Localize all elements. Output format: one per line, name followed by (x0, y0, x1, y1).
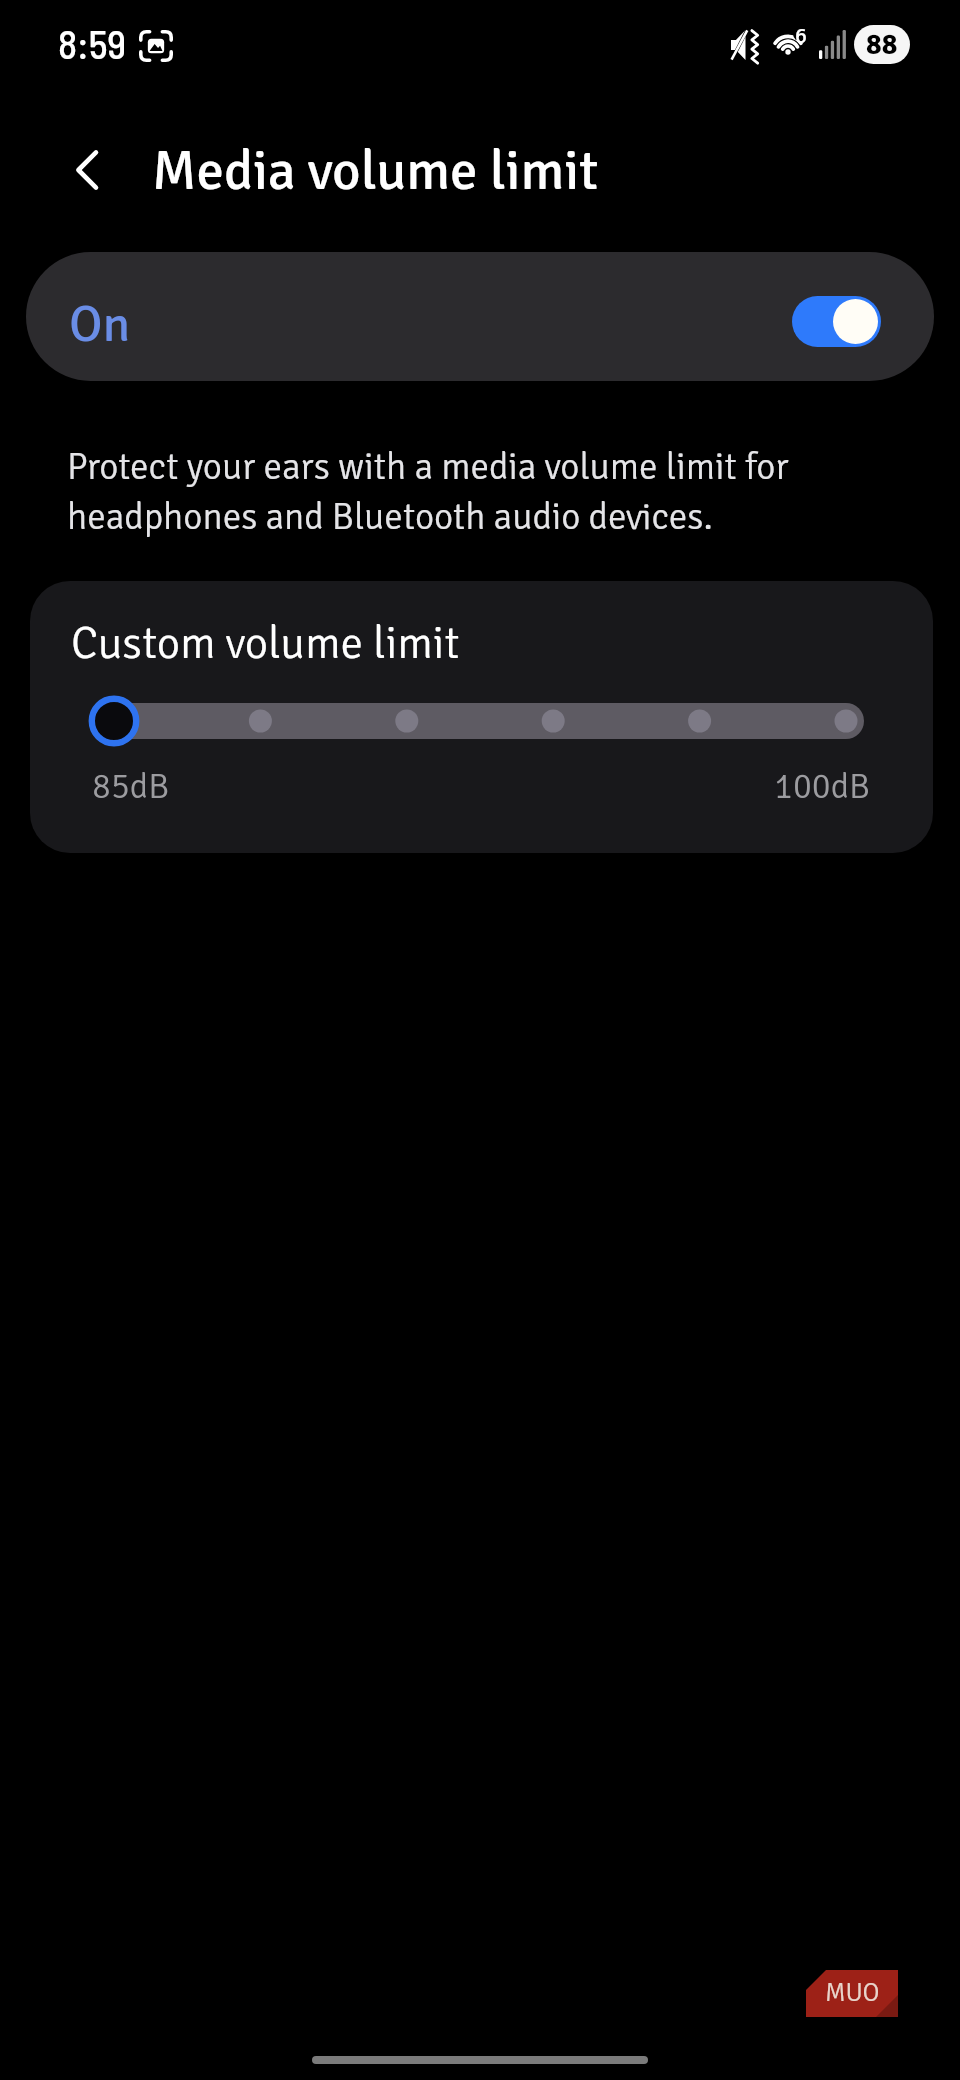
staticText: Protect your ears with a media volume li… (67, 444, 847, 540)
staticText: MUO (825, 1977, 880, 2009)
button[interactable]: Media volume limit on (792, 296, 881, 347)
staticText: On (69, 293, 131, 356)
staticText: 100dB (774, 765, 871, 808)
staticText: 8:59 (58, 19, 127, 67)
staticText: 85dB (92, 765, 170, 808)
button[interactable]: On (26, 252, 934, 381)
button[interactable]: Volume limit slider (68, 688, 918, 754)
staticText: 6 (795, 22, 807, 49)
staticText: 88 (866, 27, 898, 63)
staticText: Media volume limit (152, 137, 599, 205)
button[interactable]: Navigate up (52, 134, 124, 206)
staticText: Custom volume limit (71, 616, 460, 671)
